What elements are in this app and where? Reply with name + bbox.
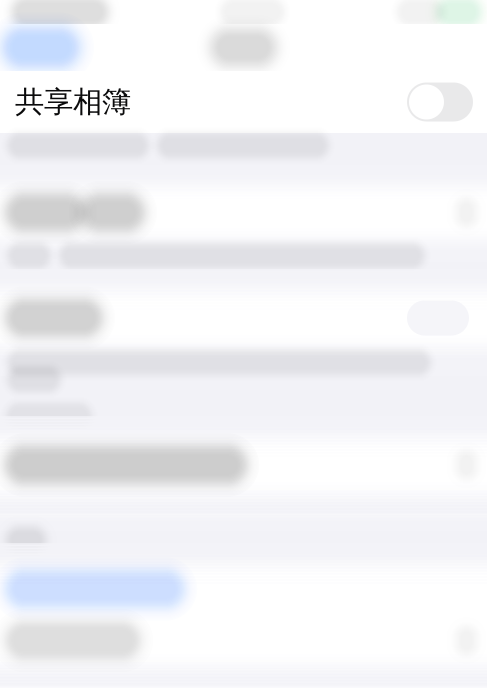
button[interactable] (0, 289, 487, 347)
button[interactable] (0, 615, 487, 666)
staticText: 共享相簿 (15, 84, 131, 120)
button[interactable]: 共享相簿 (0, 71, 487, 133)
button[interactable] (0, 436, 487, 494)
button[interactable] (0, 185, 487, 240)
button[interactable] (0, 563, 487, 615)
